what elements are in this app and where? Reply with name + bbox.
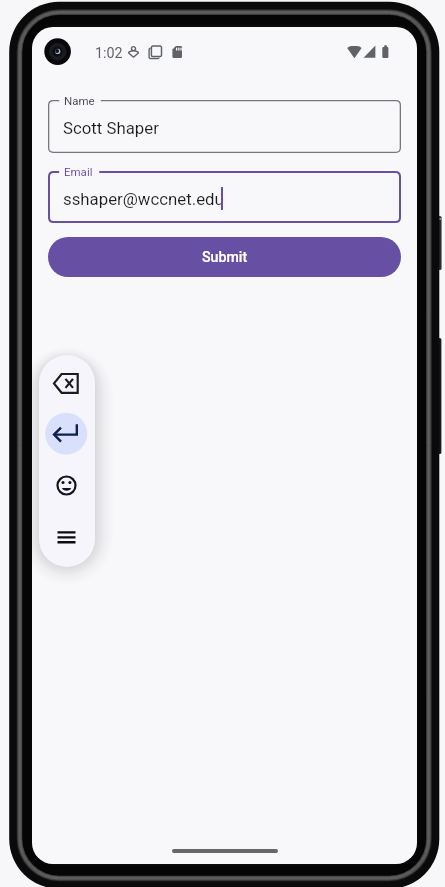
staticText: sshaper@wccnet.edu: [63, 189, 224, 209]
button[interactable]: Email: [48, 171, 401, 223]
button[interactable]: Backspace: [39, 355, 95, 411]
button[interactable]: Enter: [39, 405, 95, 461]
button[interactable]: Name: [48, 100, 401, 153]
button[interactable]: Menu: [39, 509, 95, 565]
staticText: Name: [64, 94, 95, 107]
staticText: Submit: [202, 249, 248, 266]
staticText: Email: [64, 165, 93, 178]
button[interactable]: Emoji: [39, 457, 95, 513]
staticText: 1:02: [95, 45, 123, 62]
button[interactable]: Submit: [48, 237, 401, 277]
staticText: Scott Shaper: [63, 118, 159, 138]
